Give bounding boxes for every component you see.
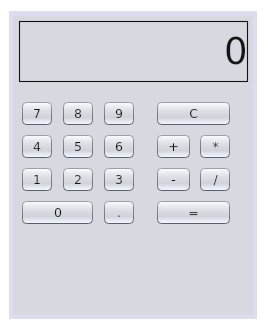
button[interactable]: 3	[104, 168, 134, 191]
staticText: 4	[33, 139, 41, 154]
button[interactable]: 2	[63, 168, 93, 191]
staticText: 2	[74, 172, 82, 187]
staticText: 1	[33, 172, 41, 187]
button[interactable]: .	[104, 201, 134, 224]
staticText: /	[213, 172, 218, 187]
button[interactable]: =	[157, 201, 230, 224]
staticText: =	[188, 205, 199, 220]
staticText: 5	[74, 139, 82, 154]
button[interactable]: *	[200, 135, 230, 158]
staticText: *	[212, 139, 219, 154]
staticText: 0	[54, 205, 62, 220]
staticText: 0	[224, 30, 248, 73]
button[interactable]: -	[157, 168, 190, 191]
staticText: .	[117, 205, 121, 220]
button[interactable]: 8	[63, 102, 93, 125]
button[interactable]: 9	[104, 102, 134, 125]
staticText: 7	[33, 106, 41, 121]
staticText: 3	[115, 172, 123, 187]
staticText: -	[171, 172, 176, 187]
staticText: 8	[74, 106, 82, 121]
button[interactable]: 7	[22, 102, 52, 125]
staticText: 9	[115, 106, 123, 121]
staticText: 6	[115, 139, 123, 154]
button[interactable]: 4	[22, 135, 52, 158]
button[interactable]: 5	[63, 135, 93, 158]
button[interactable]: 0	[22, 201, 93, 224]
button[interactable]: /	[200, 168, 230, 191]
button[interactable]: C	[157, 102, 230, 125]
button[interactable]: 1	[22, 168, 52, 191]
button[interactable]: 6	[104, 135, 134, 158]
staticText: +	[168, 139, 179, 154]
button[interactable]: +	[157, 135, 190, 158]
staticText: C	[189, 106, 198, 121]
